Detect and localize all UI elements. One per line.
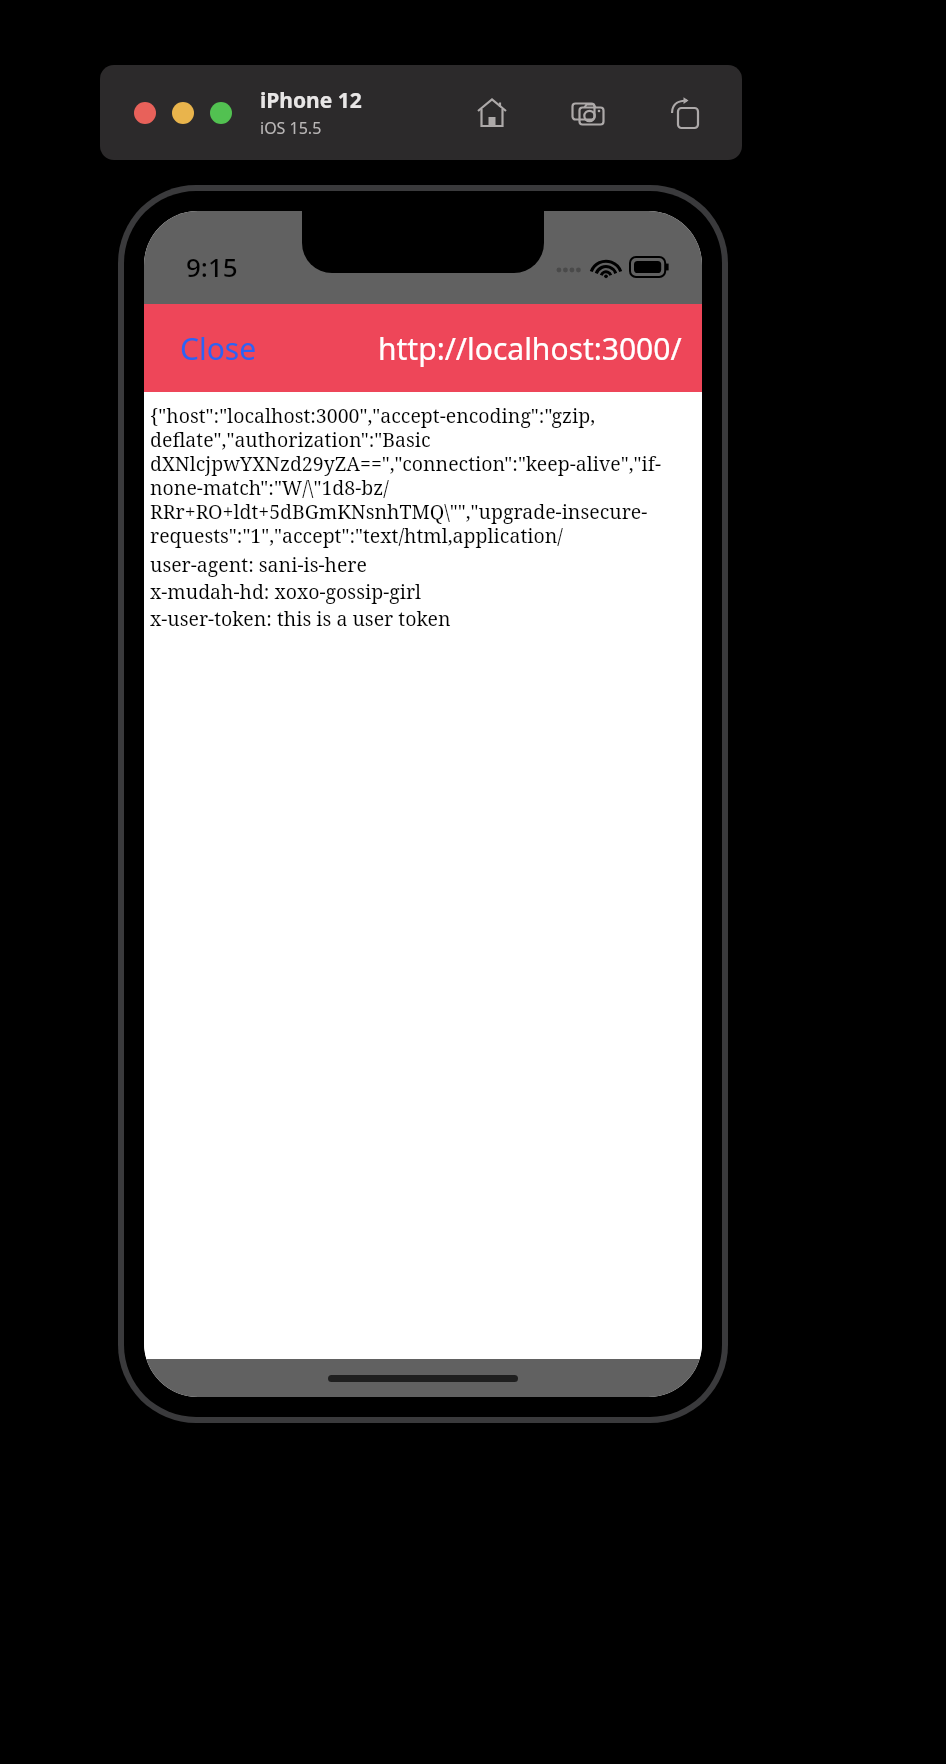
button[interactable]: Close window — [134, 102, 156, 124]
button[interactable]: Zoom window — [210, 102, 232, 124]
staticText: user-agent: sani-is-here — [150, 551, 367, 578]
staticText: iOS 15.5 — [260, 117, 322, 139]
staticText: Close — [180, 328, 257, 369]
button[interactable]: Rotate — [662, 91, 706, 135]
button[interactable]: Close — [168, 320, 269, 377]
button[interactable]: Minimize window — [172, 102, 194, 124]
button[interactable]: http://localhost:3000/ — [374, 320, 686, 377]
staticText: x-user-token: this is a user token — [150, 605, 451, 632]
staticText: {"host":"localhost:3000","accept-encodin… — [150, 402, 702, 549]
button[interactable]: Screenshot — [566, 91, 610, 135]
staticText: x-mudah-hd: xoxo-gossip-girl — [150, 578, 422, 605]
staticText: iPhone 12 — [260, 86, 362, 115]
staticText: http://localhost:3000/ — [378, 328, 682, 369]
button[interactable]: Home — [470, 91, 514, 135]
staticText: 9:15 — [186, 249, 238, 284]
